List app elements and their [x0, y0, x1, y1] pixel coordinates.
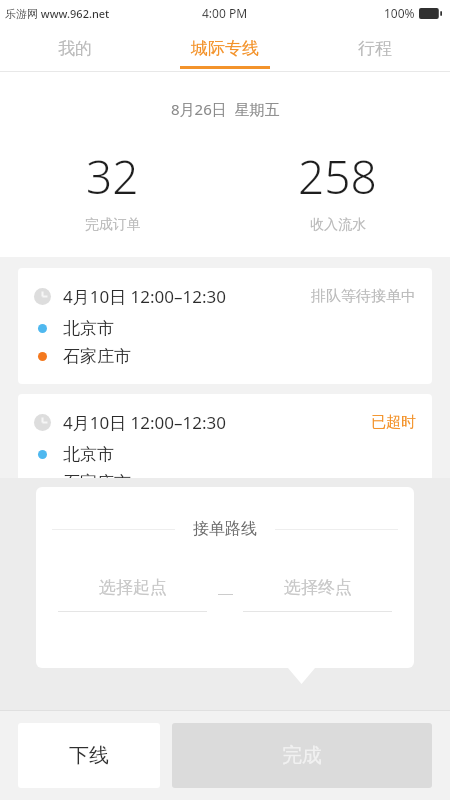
button[interactable]: 我的 — [0, 26, 150, 71]
staticText: 乐游网 www.962.net — [5, 6, 110, 21]
staticText: 北京市 — [63, 318, 114, 339]
staticText: 收入流水 — [310, 216, 366, 234]
button[interactable]: 城际专线 — [150, 26, 300, 71]
staticText: 4:00 PM — [202, 5, 248, 21]
button[interactable]: 选择终点 — [243, 577, 392, 612]
other: Time — [34, 414, 51, 431]
staticText: 选择起点 — [99, 577, 167, 598]
staticText: 完成 — [282, 743, 322, 768]
staticText: 北京市 — [63, 444, 114, 465]
staticText: 4月10日 12:00–12:30 — [63, 285, 226, 308]
other: Time — [34, 288, 51, 305]
button[interactable]: 行程 — [300, 26, 450, 71]
staticText: 32 — [86, 145, 139, 208]
staticText: 选择终点 — [284, 577, 352, 598]
staticText: 石家庄市 — [63, 472, 131, 493]
staticText: 排队等待接单中 — [311, 287, 416, 306]
staticText: 8月26日 星期五 — [171, 99, 280, 119]
staticText: 完成订单 — [85, 216, 141, 234]
staticText: 已超时 — [371, 413, 416, 432]
staticText: 行程 — [358, 38, 392, 59]
staticText: 石家庄市 — [63, 346, 131, 367]
staticText: 我的 — [58, 38, 92, 59]
staticText: 258 — [298, 145, 377, 208]
button[interactable]: Time — [18, 268, 432, 384]
staticText: 接单路线 — [193, 519, 257, 539]
staticText: 下线 — [69, 743, 109, 768]
button[interactable]: 下线 — [18, 723, 160, 788]
button[interactable]: Time — [18, 394, 432, 510]
staticText: 100% — [384, 5, 415, 21]
staticText: 城际专线 — [191, 38, 259, 59]
staticText: 4月10日 12:00–12:30 — [63, 411, 226, 434]
button[interactable]: 选择起点 — [58, 577, 207, 612]
